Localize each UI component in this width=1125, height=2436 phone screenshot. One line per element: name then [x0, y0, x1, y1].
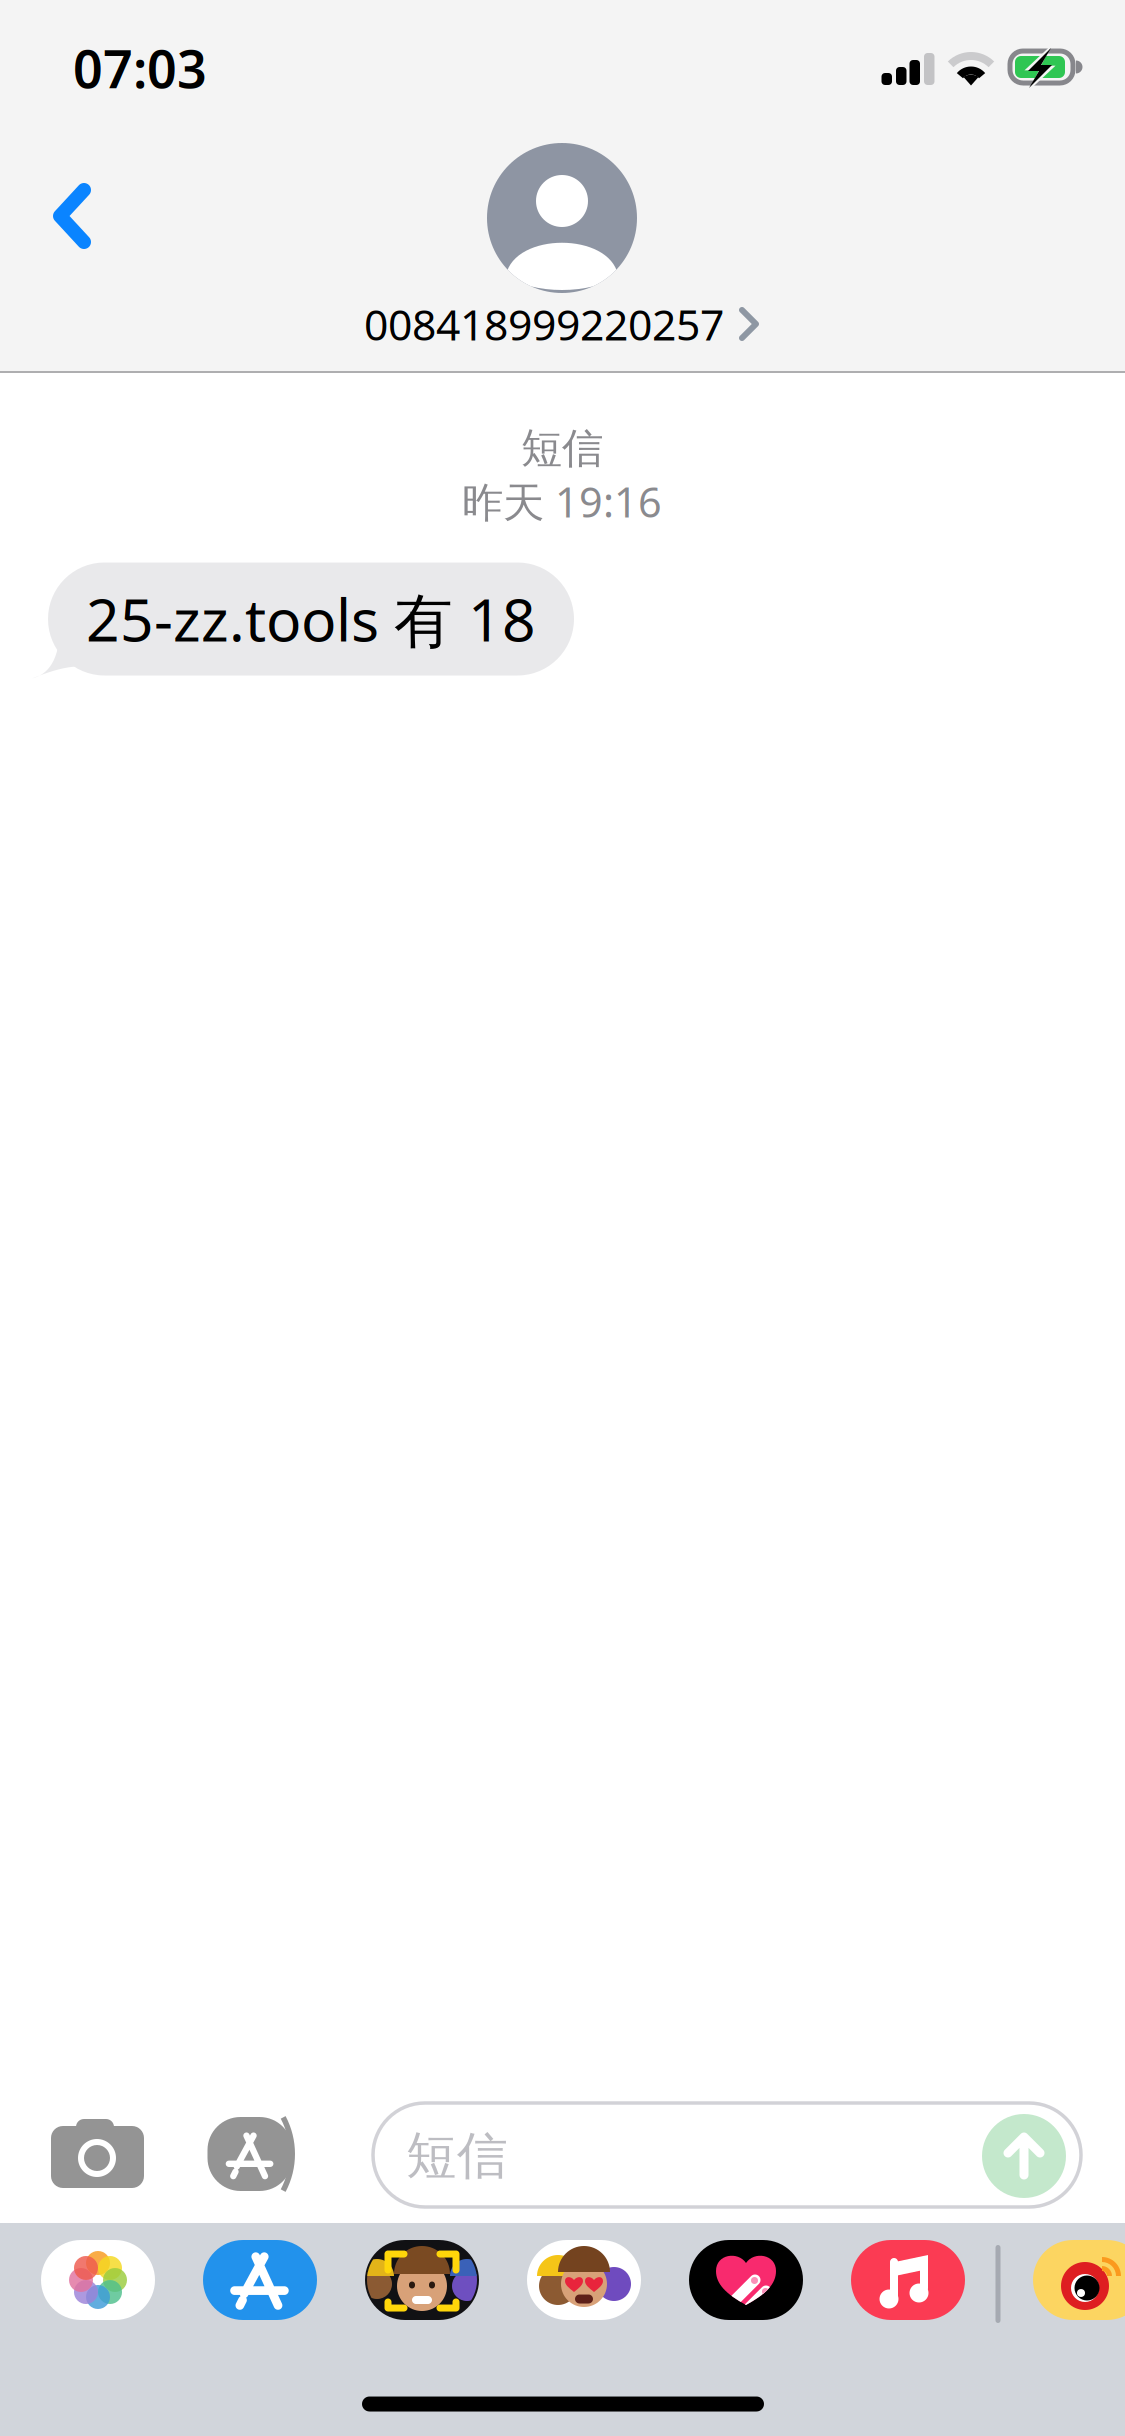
button[interactable]: App: [36, 2235, 160, 2325]
staticText: 短信: [406, 2125, 508, 2187]
button[interactable]: App: [198, 2235, 322, 2325]
button[interactable]: 008418999220257: [302, 134, 822, 354]
button[interactable]: Camera: [51, 2117, 147, 2193]
button[interactable]: Back: [24, 156, 134, 276]
staticText: 昨天 19:16: [462, 474, 662, 529]
button[interactable]: Send: [980, 2112, 1068, 2200]
button[interactable]: App: [846, 2235, 970, 2325]
staticText: 短信: [521, 423, 603, 474]
staticText: 008418999220257: [364, 296, 724, 352]
button[interactable]: App: [684, 2235, 808, 2325]
staticText: 25-zz.tools 有 18: [86, 580, 536, 658]
staticText: 07:03: [73, 33, 207, 103]
button[interactable]: App: [522, 2235, 646, 2325]
button[interactable]: App: [360, 2235, 484, 2325]
button[interactable]: Apps: [206, 2115, 310, 2195]
button[interactable]: App: [1028, 2235, 1125, 2325]
